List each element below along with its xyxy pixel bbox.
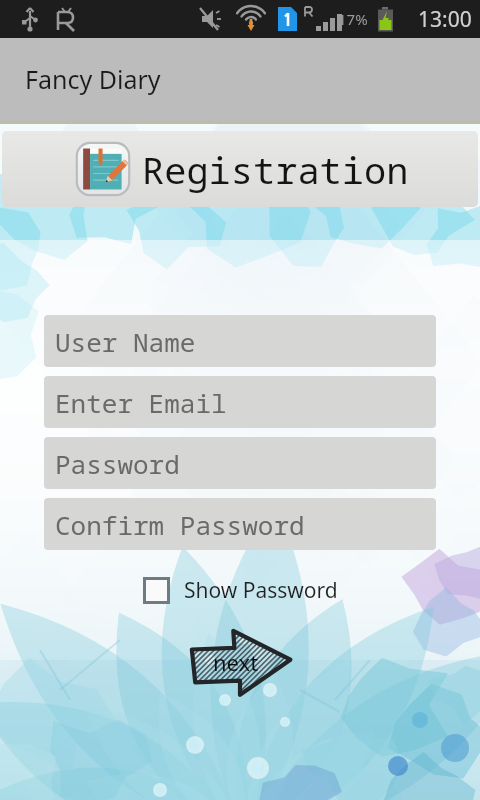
staticText: Show Password — [184, 576, 338, 605]
staticText: Password — [55, 446, 180, 481]
button[interactable]: Show Password — [139, 572, 342, 609]
staticText: Confirm Password — [55, 507, 305, 542]
button[interactable]: Registration — [2, 131, 478, 207]
staticText: Enter Email — [55, 385, 227, 420]
staticText: Fancy Diary — [25, 62, 161, 96]
staticText: next — [213, 647, 259, 677]
button[interactable]: Enter Email — [44, 376, 436, 428]
button[interactable]: Password — [44, 437, 436, 489]
button[interactable]: Next — [184, 623, 296, 701]
staticText: User Name — [55, 324, 196, 359]
staticText: 17% — [338, 9, 368, 29]
button[interactable]: Confirm Password — [44, 498, 436, 550]
staticText: Registration — [142, 144, 409, 194]
staticText: 13:00 — [418, 5, 472, 34]
button[interactable]: User Name — [44, 315, 436, 367]
